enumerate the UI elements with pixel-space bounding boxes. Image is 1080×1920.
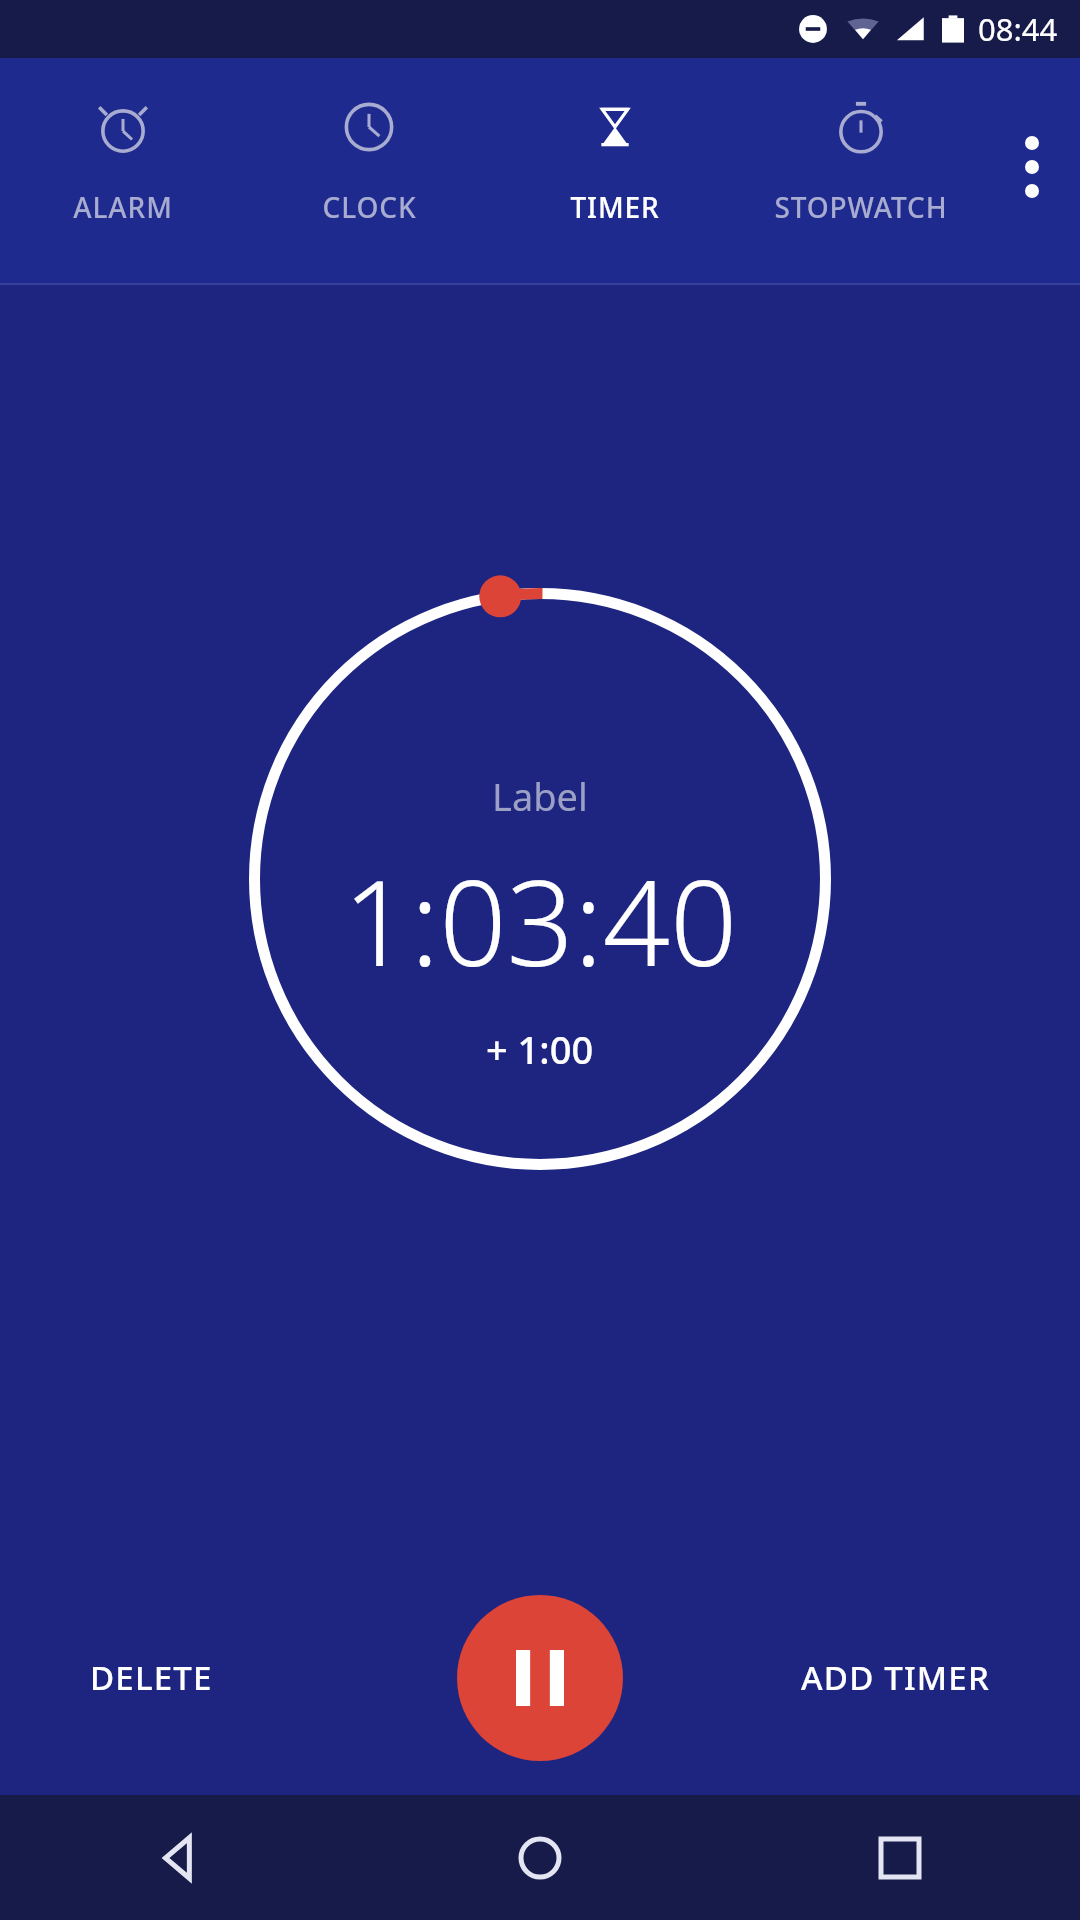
button[interactable]: Recent apps (720, 1795, 1080, 1920)
staticText: 1:03:40 (343, 840, 738, 1001)
staticText: + 1:00 (486, 1023, 594, 1075)
button[interactable]: Back (0, 1795, 360, 1920)
button[interactable]: Home (360, 1795, 720, 1920)
staticText: TIMER (570, 188, 660, 226)
staticText: 08:44 (978, 8, 1058, 50)
button[interactable]: CLOCK (246, 58, 492, 285)
button[interactable]: ALARM (0, 58, 246, 285)
staticText: STOPWATCH (774, 188, 948, 226)
button[interactable]: ADD TIMER (783, 1639, 1008, 1716)
button[interactable]: TIMER (492, 58, 738, 285)
staticText: DELETE (90, 1655, 213, 1700)
button[interactable]: More options (984, 58, 1080, 285)
staticText: CLOCK (322, 188, 417, 226)
staticText: ADD TIMER (801, 1655, 990, 1700)
button[interactable]: STOPWATCH (738, 58, 984, 285)
staticText: ALARM (73, 188, 173, 226)
button[interactable]: DELETE (72, 1639, 231, 1716)
staticText: Label (492, 770, 588, 822)
button[interactable]: Pause timer (457, 1595, 623, 1761)
